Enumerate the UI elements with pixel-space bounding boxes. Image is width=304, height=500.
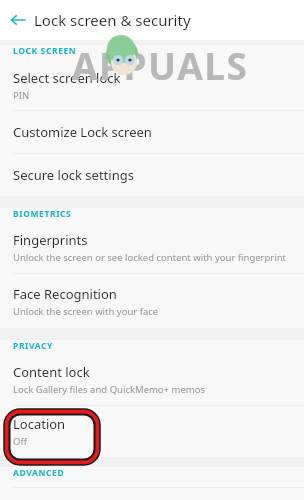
staticText: Lock Gallery files and QuickMemo+ memos	[13, 383, 205, 396]
button[interactable]: Fingerprints	[0, 227, 304, 273]
button[interactable]: Secure lock settings	[0, 154, 304, 196]
staticText: Off	[13, 435, 27, 448]
staticText: Lock screen & security	[34, 10, 191, 30]
button[interactable]: Select screen lock	[0, 63, 304, 110]
staticText: Location	[13, 415, 66, 433]
staticText: LOCK SCREEN	[13, 45, 77, 57]
button[interactable]: Customize Lock screen	[0, 111, 304, 153]
staticText: PRIVACY	[13, 340, 54, 352]
staticText: ADVANCED	[13, 467, 65, 479]
staticText: Unlock the screen with your face	[13, 305, 159, 318]
staticText: Customize Lock screen	[13, 123, 152, 141]
staticText: Unlock the screen or see locked content …	[13, 251, 287, 264]
button[interactable]: Back	[8, 10, 28, 30]
staticText: Select screen lock	[13, 69, 121, 87]
staticText: Face Recognition	[13, 285, 117, 303]
staticText: APPUALS	[72, 40, 249, 90]
button[interactable]: Location	[0, 406, 304, 457]
staticText: Fingerprints	[13, 231, 88, 249]
staticText: BIOMETRICS	[13, 208, 72, 220]
staticText: Content lock	[13, 363, 90, 381]
staticText: Secure lock settings	[13, 166, 134, 184]
button[interactable]: Face Recognition	[0, 274, 304, 328]
button[interactable]: Content lock	[0, 359, 304, 405]
staticText: PIN	[13, 89, 30, 102]
